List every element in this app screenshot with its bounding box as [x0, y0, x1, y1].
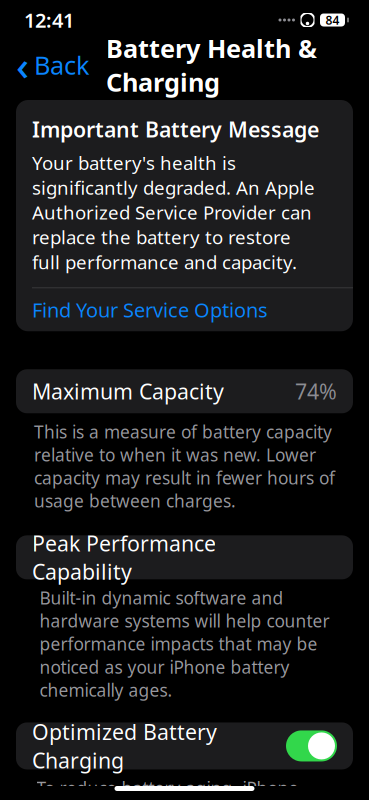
staticText: Battery Health & Charging — [106, 31, 317, 99]
staticText: 12:41 — [24, 7, 74, 33]
staticText: Your battery's health is significantly d… — [32, 150, 315, 274]
staticText: 84 — [325, 12, 339, 28]
staticText: Optimized Battery Charging — [32, 718, 217, 774]
button[interactable]: Peak Performance Capability — [0, 535, 369, 579]
button[interactable]: Optimized Battery Charging — [0, 722, 369, 769]
staticText: Maximum Capacity — [32, 377, 224, 405]
staticText: Peak Performance Capability — [32, 529, 216, 586]
staticText: Find Your Service Options — [32, 296, 268, 323]
button[interactable]: Find Your Service Options — [16, 288, 353, 331]
staticText: ‹ — [16, 38, 29, 91]
staticText: Important Battery Message — [32, 115, 319, 143]
staticText: Back — [34, 48, 90, 82]
staticText: 74% — [295, 377, 337, 405]
button[interactable]: ‹ — [6, 43, 100, 87]
staticText: To reduce battery aging, iPhone learns f… — [36, 776, 332, 800]
staticText: This is a measure of battery capacity re… — [34, 420, 335, 512]
staticText: Built-in dynamic software and hardware s… — [39, 586, 329, 701]
